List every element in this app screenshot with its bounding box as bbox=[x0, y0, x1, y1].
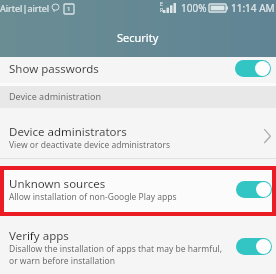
staticText: 11:14 AM bbox=[231, 1, 275, 15]
staticText: 100% bbox=[181, 1, 207, 15]
button[interactable]: Unknown sources bbox=[0, 170, 276, 212]
staticText: View or deactivate device administrators bbox=[9, 139, 171, 151]
button[interactable]: Unknown sources switch bbox=[236, 181, 272, 198]
staticText: Device administration bbox=[9, 90, 102, 102]
staticText: Verify apps bbox=[9, 228, 69, 244]
staticText: 1 bbox=[67, 5, 71, 13]
staticText: E bbox=[160, 1, 163, 8]
staticText: R bbox=[160, 7, 164, 14]
staticText: Disallow the installation of apps that m… bbox=[9, 243, 222, 267]
staticText: Show passwords bbox=[9, 61, 99, 77]
staticText: Device administrators bbox=[9, 124, 127, 140]
button[interactable]: Verify apps switch bbox=[236, 238, 272, 255]
staticText: Allow installation of non-Google Play ap… bbox=[9, 191, 177, 203]
other: Open device administrators bbox=[260, 125, 275, 143]
staticText: Security bbox=[117, 30, 159, 45]
staticText: Airtel|airtel bbox=[0, 2, 50, 14]
button[interactable]: Device administrators bbox=[0, 108, 276, 158]
staticText: Unknown sources bbox=[9, 176, 106, 192]
button[interactable]: Show passwords bbox=[0, 57, 276, 86]
button[interactable]: Verify apps bbox=[0, 222, 276, 274]
button[interactable]: Show passwords switch bbox=[235, 60, 271, 77]
